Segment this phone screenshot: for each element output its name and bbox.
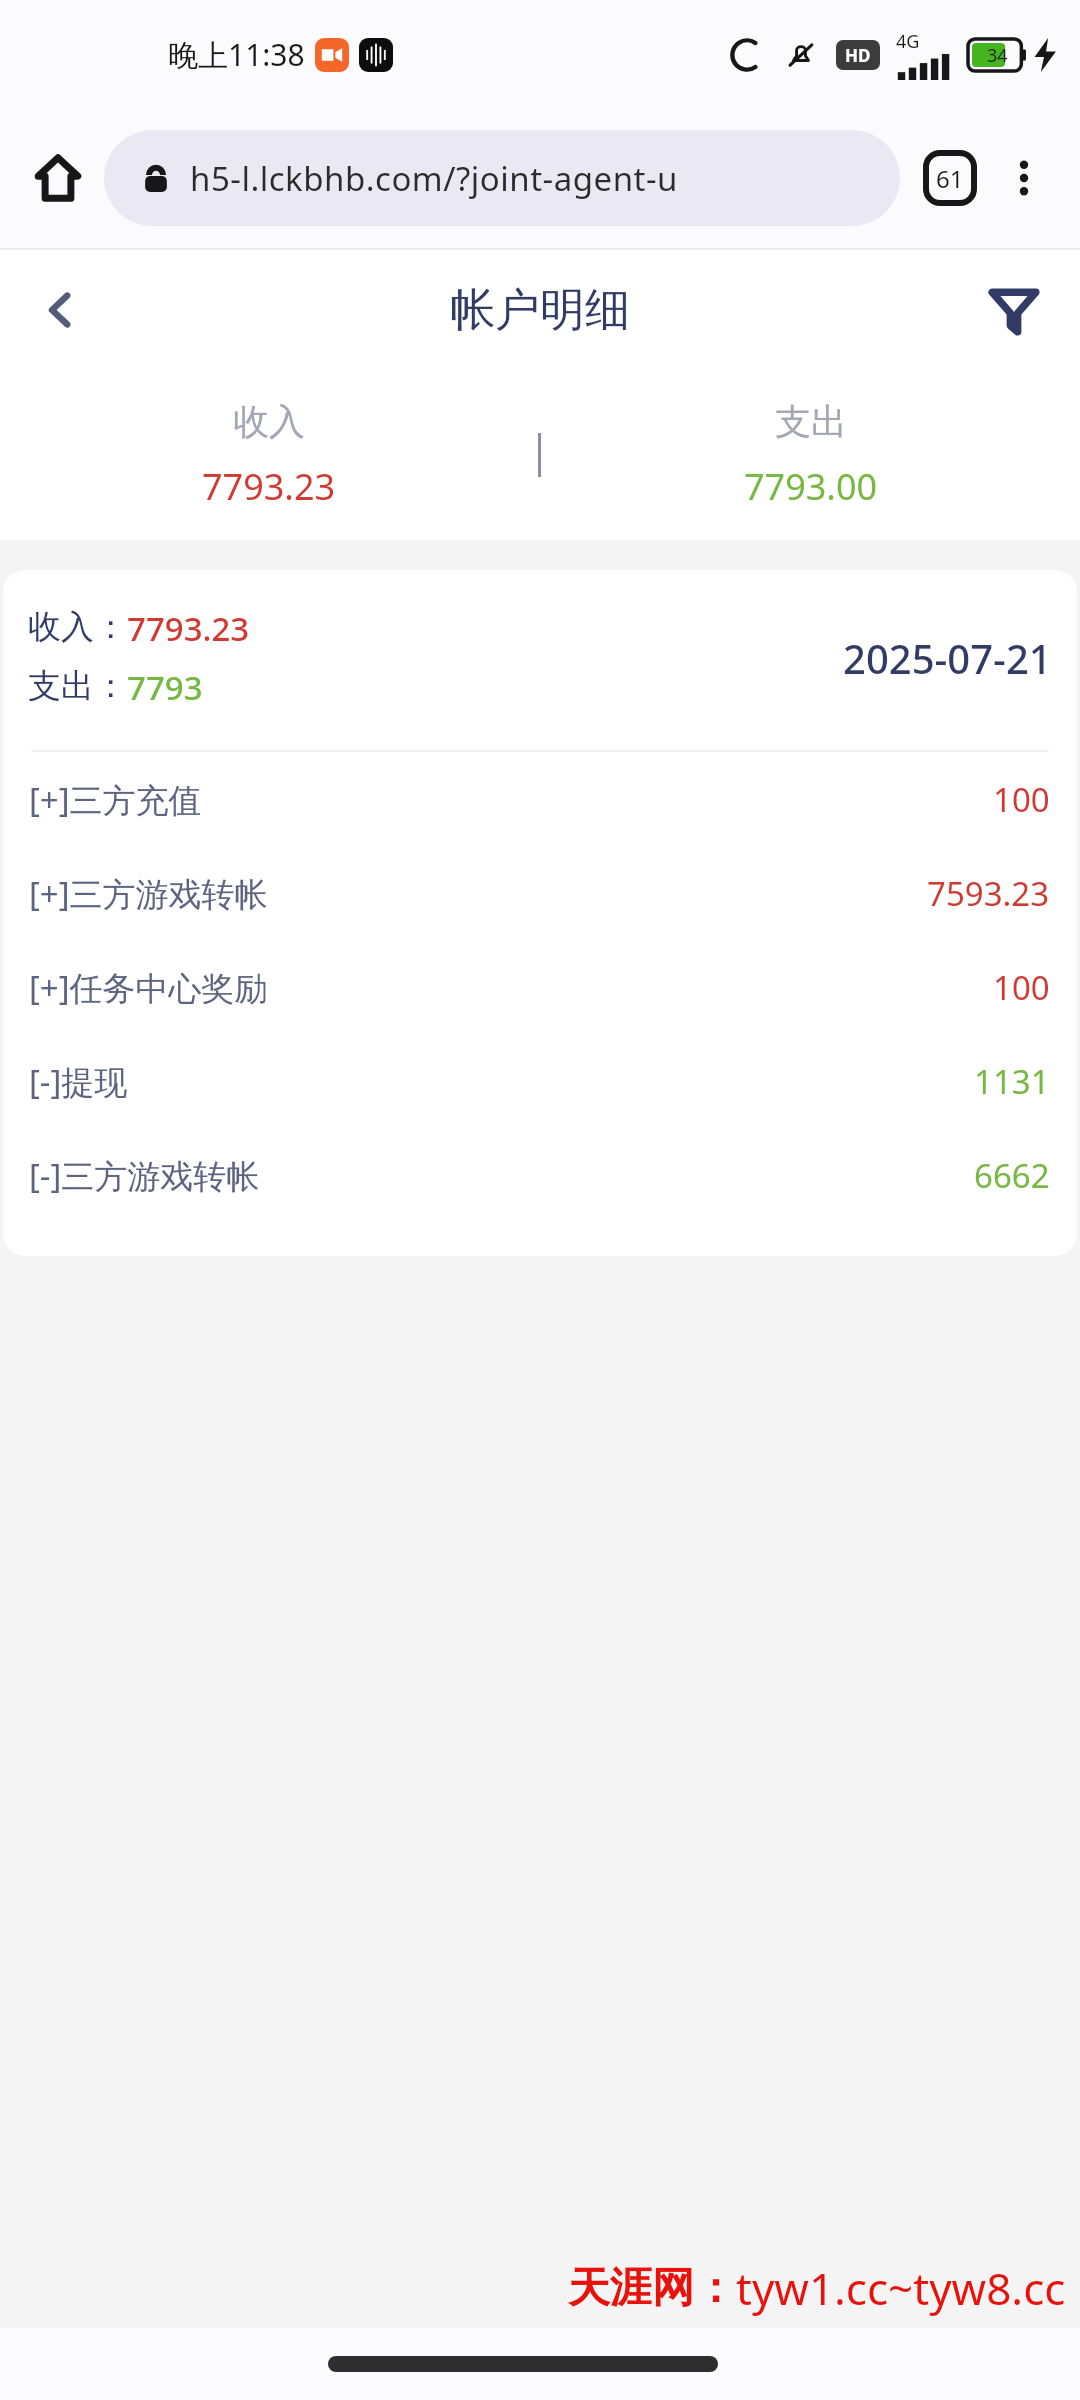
staticText: 支出 (775, 399, 847, 444)
staticText: [+]任务中心奖励 (29, 965, 268, 1010)
button[interactable]: Filter (974, 270, 1054, 350)
button[interactable]: Home (26, 146, 90, 210)
staticText: 2025-07-21 (843, 631, 1052, 685)
staticText: h5-l.lckbhb.com/?joint-agent-u (190, 156, 678, 201)
staticText: 100 (993, 777, 1050, 822)
staticText: 1131 (974, 1059, 1050, 1104)
staticText: 6662 (974, 1153, 1050, 1198)
button[interactable]: More options (994, 148, 1054, 208)
staticText: [+]三方游戏转帐 (29, 871, 268, 916)
staticText: HD (845, 44, 871, 67)
staticText: 收入 (233, 399, 305, 444)
staticText: 7793 (127, 665, 203, 710)
staticText: 61 (936, 162, 964, 195)
staticText: [-]提现 (29, 1059, 128, 1104)
staticText: 支出： (28, 665, 127, 707)
button[interactable]: [+]任务中心奖励 (3, 940, 1077, 1034)
staticText: 天涯网： (568, 2262, 736, 2315)
button[interactable]: [-]提现 (3, 1034, 1077, 1128)
button[interactable]: [-]三方游戏转帐 (3, 1128, 1077, 1222)
staticText: [+]三方充值 (29, 777, 202, 822)
staticText: 收入： (28, 606, 127, 648)
button[interactable]: [+]三方充值 (3, 752, 1077, 846)
staticText: 晚上11:38 (168, 34, 305, 75)
button[interactable]: Back (20, 270, 100, 350)
staticText: 7593.23 (927, 871, 1050, 916)
staticText: 7793.23 (202, 462, 336, 511)
staticText: 帐户明细 (450, 282, 630, 339)
staticText: 34 (987, 43, 1008, 68)
button[interactable]: [+]三方游戏转帐 (3, 846, 1077, 940)
button[interactable]: h5-l.lckbhb.com/?joint-agent-u (104, 130, 900, 226)
staticText: 100 (993, 965, 1050, 1010)
button[interactable]: Tabs (918, 146, 982, 210)
staticText: 7793.23 (127, 606, 250, 651)
staticText: 7793.00 (744, 462, 878, 511)
staticText: [-]三方游戏转帐 (29, 1153, 260, 1198)
staticText: tyw1.cc~tyw8.cc (736, 2258, 1066, 2318)
staticText: 4G (896, 29, 920, 54)
